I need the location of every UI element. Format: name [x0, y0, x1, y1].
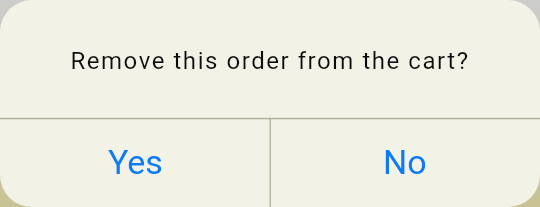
staticText: No [383, 142, 427, 182]
button[interactable]: No [270, 120, 540, 207]
staticText: Yes [108, 142, 163, 182]
staticText: Remove this order from the cart? [70, 47, 470, 75]
button[interactable]: Yes [0, 120, 270, 207]
